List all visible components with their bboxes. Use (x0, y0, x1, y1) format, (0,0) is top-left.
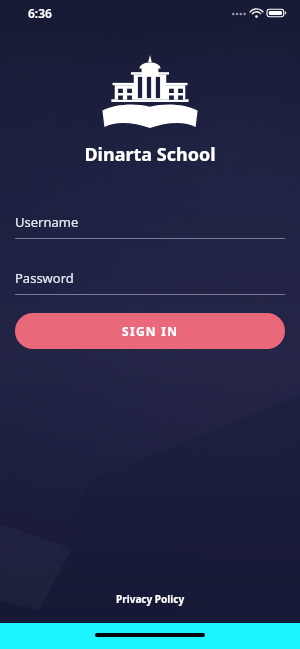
staticText: Privacy Policy (116, 592, 185, 606)
other: Home (95, 633, 205, 637)
staticText: Password (15, 269, 74, 287)
button[interactable]: Password (15, 269, 285, 295)
button[interactable]: Privacy Policy (102, 586, 199, 612)
staticText: Dinarta School (84, 142, 216, 167)
staticText: 6:36 (28, 5, 52, 21)
staticText: SIGN IN (122, 323, 179, 339)
staticText: Username (15, 213, 79, 231)
button[interactable]: SIGN IN (15, 313, 285, 349)
button[interactable]: Username (15, 213, 285, 239)
